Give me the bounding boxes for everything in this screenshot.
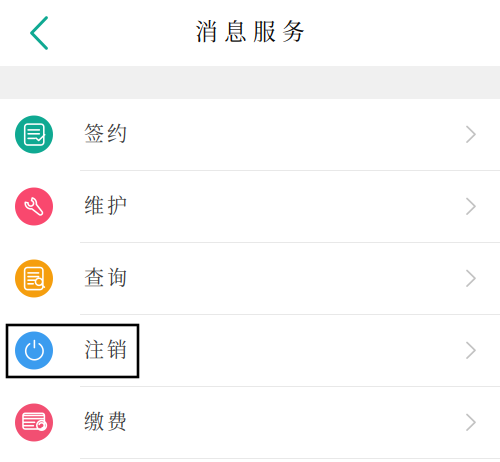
button[interactable]: 缴费: [0, 387, 500, 459]
button[interactable]: 注销: [0, 315, 500, 387]
button[interactable]: 维护: [0, 171, 500, 243]
staticText: 签约: [84, 118, 127, 147]
staticText: 查询: [84, 262, 127, 291]
button[interactable]: Back: [0, 0, 64, 66]
staticText: 消息服务: [195, 14, 305, 46]
button[interactable]: 查询: [0, 243, 500, 315]
staticText: 维护: [84, 190, 127, 219]
button[interactable]: 签约: [0, 99, 500, 171]
staticText: 注销: [84, 334, 127, 363]
staticText: 缴费: [84, 406, 127, 435]
